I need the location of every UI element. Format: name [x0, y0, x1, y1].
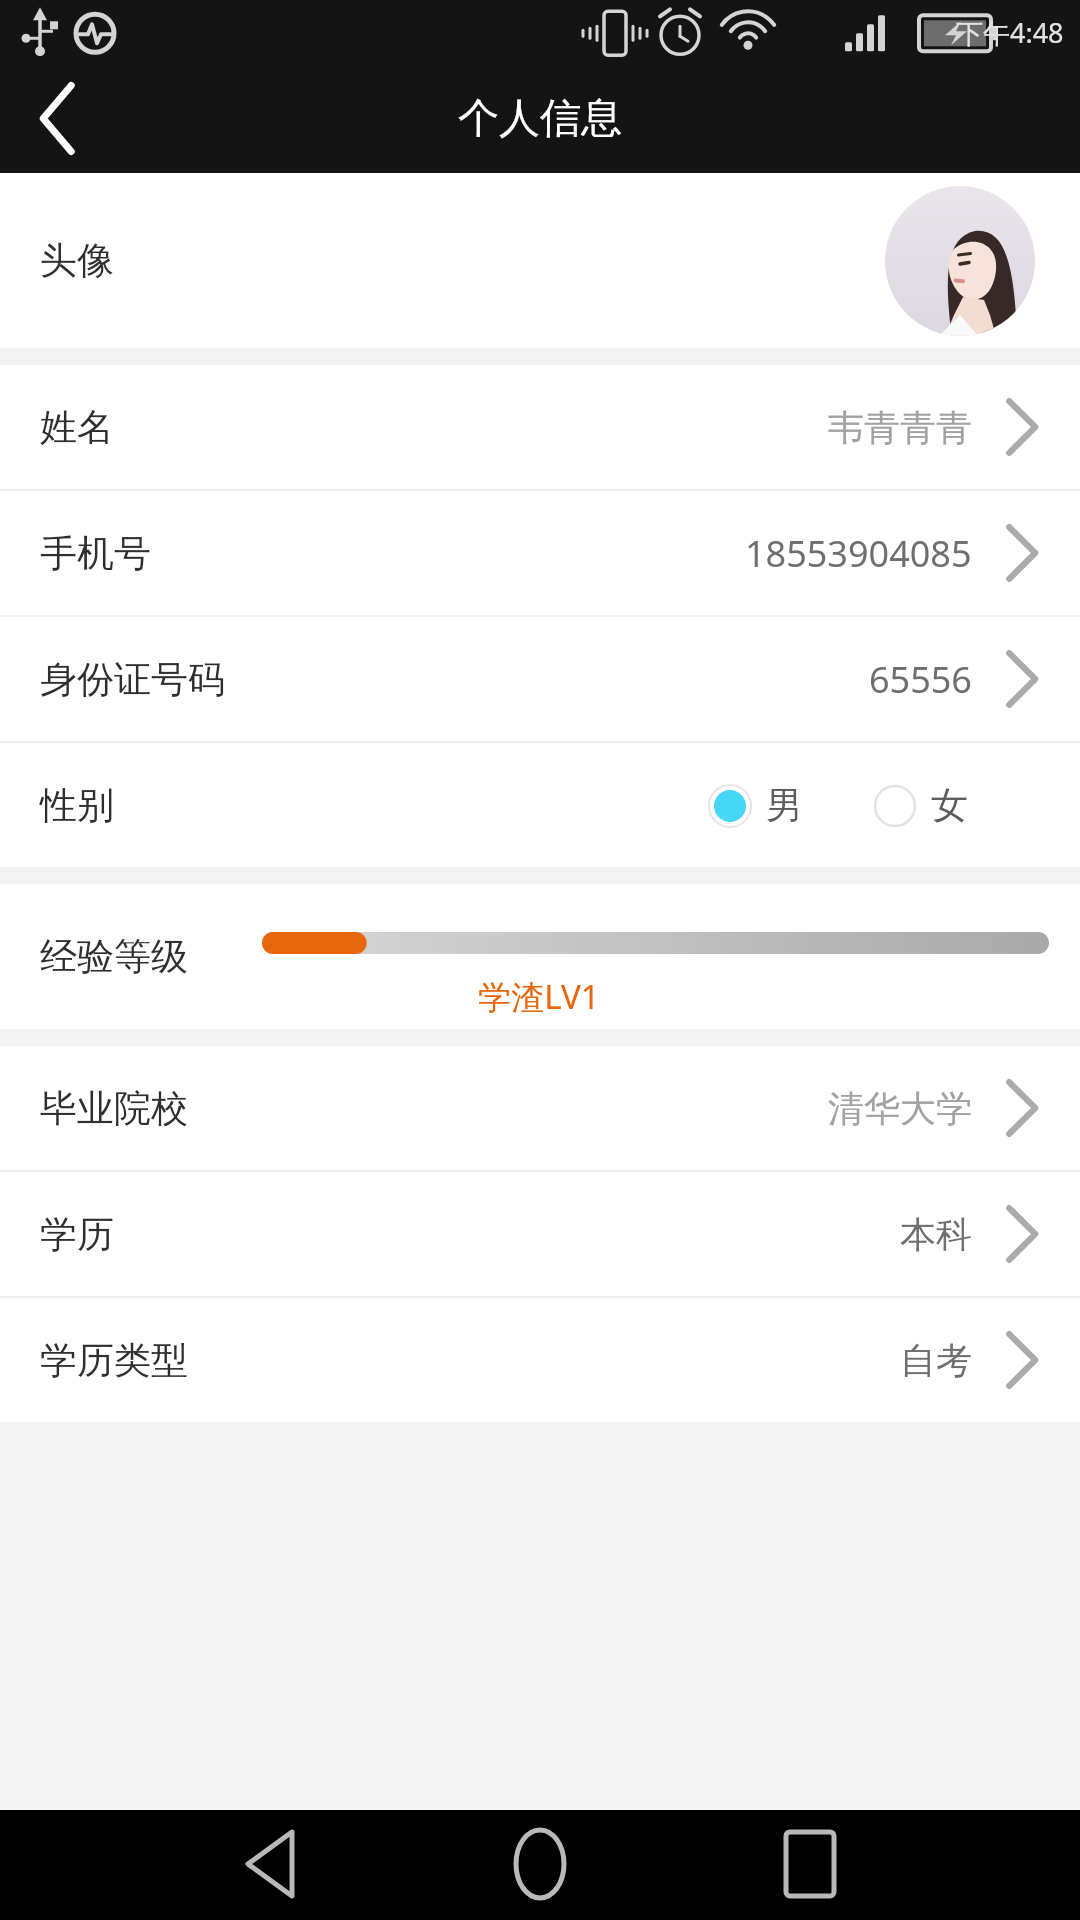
- staticText: 个人信息: [458, 93, 622, 145]
- button[interactable]: 学历: [0, 1172, 1080, 1296]
- staticText: 学历类型: [40, 1337, 188, 1384]
- staticText: 身份证号码: [40, 656, 225, 703]
- button[interactable]: Back: [0, 64, 110, 173]
- button[interactable]: Back: [0, 1810, 356, 1920]
- button[interactable]: Home: [362, 1810, 718, 1920]
- button[interactable]: 手机号: [0, 491, 1080, 615]
- staticText: 经验等级: [40, 933, 188, 980]
- staticText: 女: [931, 782, 968, 829]
- staticText: 毕业院校: [40, 1085, 188, 1132]
- staticText: 学历: [40, 1211, 114, 1258]
- staticText: 性别: [40, 782, 114, 829]
- button[interactable]: 头像: [0, 173, 1080, 348]
- staticText: 自考: [900, 1338, 972, 1383]
- staticText: 姓名: [40, 404, 114, 451]
- staticText: 18553904085: [745, 529, 972, 578]
- button[interactable]: 学历类型: [0, 1298, 1080, 1422]
- staticText: 男: [766, 782, 803, 829]
- staticText: 头像: [40, 237, 114, 284]
- button[interactable]: 身份证号码: [0, 617, 1080, 741]
- staticText: 清华大学: [828, 1086, 972, 1131]
- staticText: 手机号: [40, 530, 151, 577]
- staticText: 下午4:48: [956, 14, 1064, 51]
- button[interactable]: 姓名: [0, 365, 1080, 489]
- staticText: 本科: [900, 1212, 972, 1257]
- staticText: 韦青青青: [828, 405, 972, 450]
- button[interactable]: 毕业院校: [0, 1046, 1080, 1170]
- staticText: 学渣LV1: [478, 974, 600, 1019]
- button[interactable]: 女: [873, 782, 968, 829]
- staticText: 65556: [869, 655, 972, 704]
- button[interactable]: 经验等级: [0, 884, 1080, 1029]
- button[interactable]: 男: [708, 782, 803, 829]
- button[interactable]: Recent apps: [724, 1810, 1080, 1920]
